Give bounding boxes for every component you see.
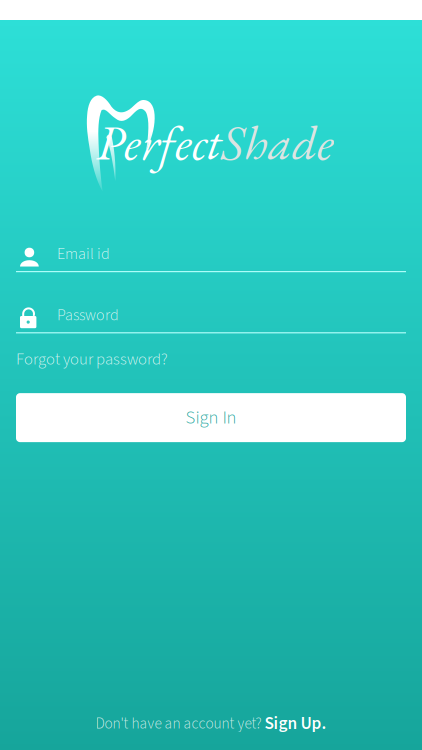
staticText: Forgot your password? [16, 347, 168, 371]
staticText: Don't have an account yet? [95, 713, 264, 734]
staticText: Sign In [185, 404, 236, 431]
staticText: Perfect [96, 110, 221, 174]
button[interactable]: Forgot your password? [0, 333, 168, 379]
staticText: Email id [57, 243, 110, 265]
staticText: Password [57, 304, 119, 327]
staticText: Shade [221, 110, 334, 174]
button[interactable]: Sign In [0, 379, 422, 442]
staticText: Sign Up. [264, 711, 326, 736]
button[interactable]: Sign Up. [264, 711, 326, 736]
